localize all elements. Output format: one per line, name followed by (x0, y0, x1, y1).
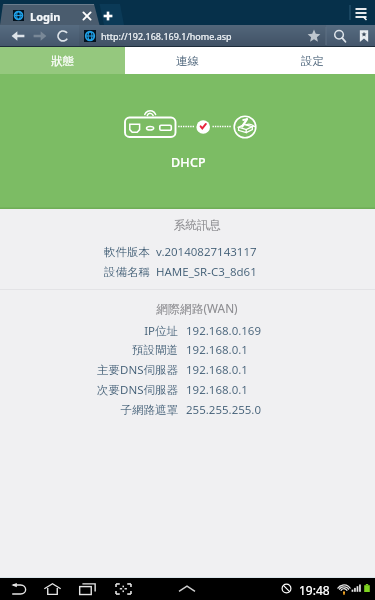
button[interactable]: Search (332, 28, 348, 44)
staticText: 連線 (176, 54, 199, 68)
staticText: IP位址 (144, 323, 178, 339)
button[interactable]: Menu (352, 4, 370, 22)
staticText: DHCP (171, 154, 206, 171)
staticText: HAME_SR-C3_8d61 (156, 264, 257, 280)
button[interactable]: Close tab (80, 9, 94, 23)
staticText: 192.168.0.169 (186, 323, 262, 339)
button[interactable]: New tab (101, 9, 115, 23)
button[interactable]: Back (10, 28, 26, 44)
button[interactable]: Home (44, 583, 61, 595)
staticText: 預設閘道 (132, 343, 178, 357)
button[interactable]: Bookmark (306, 28, 322, 44)
button[interactable]: Forward (32, 28, 48, 44)
button[interactable]: Expand (178, 582, 196, 595)
staticText: 主要DNS伺服器 (97, 362, 178, 378)
staticText: 子網路遮罩 (120, 403, 178, 417)
staticText: 網際網路(WAN) (156, 300, 238, 316)
button[interactable]: Screenshot (115, 583, 132, 595)
staticText: 19:48 (299, 582, 330, 598)
staticText: v.20140827143117 (156, 244, 257, 260)
staticText: 設備名稱 (104, 265, 150, 279)
staticText: http://192.168.169.1/home.asp (101, 30, 232, 42)
staticText: 次要DNS伺服器 (97, 382, 178, 398)
staticText: 192.168.0.1 (186, 342, 248, 358)
staticText: 255.255.255.0 (186, 402, 262, 418)
button[interactable]: 連線 (125, 47, 250, 74)
staticText: 192.168.0.1 (186, 382, 248, 398)
button[interactable]: 狀態 (0, 47, 125, 74)
button[interactable]: Bookmarks (356, 28, 372, 44)
button[interactable] (79, 25, 326, 47)
button[interactable]: Back (10, 583, 27, 595)
staticText: Login (30, 9, 61, 24)
button[interactable]: Recents (79, 583, 96, 595)
staticText: 軟件版本 (104, 245, 150, 259)
staticText: 狀態 (51, 54, 74, 68)
staticText: 192.168.0.1 (186, 362, 248, 378)
staticText: 系統訊息 (173, 218, 221, 233)
button[interactable]: Reload (55, 28, 71, 44)
button[interactable]: 設定 (250, 47, 375, 74)
staticText: 設定 (301, 54, 324, 68)
